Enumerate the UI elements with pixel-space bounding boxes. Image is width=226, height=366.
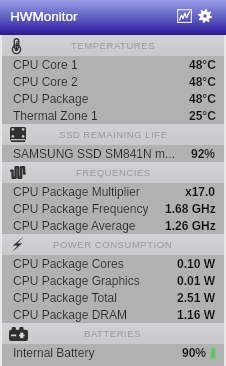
staticText: 2.51 W xyxy=(177,291,216,304)
staticText: 1.26 GHz xyxy=(165,219,216,232)
button[interactable]: CPU Core 1 xyxy=(0,56,226,73)
staticText: 25°C xyxy=(189,109,216,122)
staticText: CPU Package Graphics xyxy=(13,274,172,287)
staticText: 0.01 W xyxy=(177,274,216,287)
staticText: TEMPERATURES xyxy=(71,40,156,51)
staticText: CPU Package xyxy=(13,92,184,105)
staticText: CPU Package Total xyxy=(13,291,172,304)
button[interactable]: Thermal Zone 1 xyxy=(0,107,226,124)
button[interactable]: CPU Package xyxy=(0,90,226,107)
button[interactable]: CPU Package Frequency xyxy=(0,200,226,217)
staticText: 48°C xyxy=(189,75,216,88)
staticText: 1.16 W xyxy=(177,308,216,321)
button[interactable]: CPU Package Average xyxy=(0,217,226,234)
staticText: CPU Package Cores xyxy=(13,257,172,270)
button[interactable]: CPU Package DRAM xyxy=(0,306,226,323)
staticText: CPU Package Frequency xyxy=(13,202,160,215)
staticText: 0.10 W xyxy=(177,257,216,270)
staticText: CPU Package Multiplier xyxy=(13,185,180,198)
staticText: 92% xyxy=(191,147,216,160)
button[interactable]: Internal Battery xyxy=(0,344,226,361)
staticText: 48°C xyxy=(189,58,216,71)
staticText: POWER CONSUMPTION xyxy=(53,239,173,250)
staticText: Thermal Zone 1 xyxy=(13,109,184,122)
staticText: CPU Package Average xyxy=(13,219,160,232)
button[interactable]: CPU Core 2 xyxy=(0,73,226,90)
button[interactable]: CPU Package Total xyxy=(0,289,226,306)
staticText: 90% xyxy=(182,346,207,359)
button[interactable]: CPU Package Cores xyxy=(0,255,226,272)
button[interactable]: SAMSUNG SSD SM841N m... xyxy=(0,145,226,162)
staticText: CPU Core 2 xyxy=(13,75,184,88)
staticText: CPU Core 1 xyxy=(13,58,184,71)
staticText: HWMonitor xyxy=(10,9,78,24)
staticText: CPU Package DRAM xyxy=(13,308,172,321)
staticText: 1.68 GHz xyxy=(165,202,216,215)
staticText: Internal Battery xyxy=(13,346,177,359)
staticText: 48°C xyxy=(189,92,216,105)
staticText: SSD REMAINING LIFE xyxy=(59,129,168,140)
staticText: SAMSUNG SSD SM841N m... xyxy=(13,147,186,160)
button[interactable]: CPU Package Multiplier xyxy=(0,183,226,200)
staticText: FREQUENCIES xyxy=(76,167,151,178)
button[interactable]: CPU Package Graphics xyxy=(0,272,226,289)
button[interactable]: Settings xyxy=(198,9,216,25)
button[interactable]: Graphs xyxy=(177,9,195,25)
staticText: x17.0 xyxy=(185,185,216,198)
staticText: BATTERIES xyxy=(84,328,142,339)
